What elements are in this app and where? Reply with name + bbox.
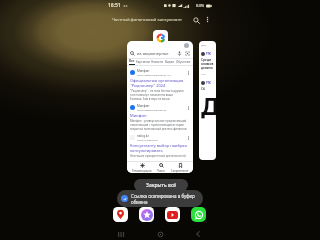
staticText: Консультанту выбор наибрая плюс xyxy=(130,143,190,148)
staticText: Минфин xyxy=(130,113,147,118)
staticText: Все xyxy=(129,59,135,63)
staticText: Сохранённое xyxy=(171,169,189,173)
staticText: Минфин xyxy=(137,69,150,73)
button[interactable]: Account xyxy=(127,41,193,173)
staticText: Поиск xyxy=(157,169,165,173)
button[interactable]: Recents xyxy=(115,228,127,240)
staticText: помогающий с проклатизации истории xyxy=(130,123,184,127)
staticText: Картинки xyxy=(136,60,150,64)
button[interactable]: Back xyxy=(192,228,204,240)
staticText: девизионн xyxy=(201,66,214,70)
button[interactable]: Закрыть всё xyxy=(134,179,188,191)
button[interactable]: Дзен xyxy=(199,41,216,160)
staticText: Ссылка скопирована в буфер обмена xyxy=(131,193,199,205)
button[interactable]: Поиск xyxy=(156,163,166,173)
staticText: РТК xyxy=(206,52,211,56)
button[interactable]: nalog.kz xyxy=(127,131,193,158)
staticText: 16:51 xyxy=(108,2,121,9)
button[interactable]: Сохранённое xyxy=(170,163,190,173)
staticText: "Рыдничкер" 2024 xyxy=(130,83,166,88)
staticText: Среди те xyxy=(201,58,214,62)
staticText: закрытой полномочий деятель финансов неж… xyxy=(130,127,190,131)
button[interactable]: Maps xyxy=(113,207,128,222)
button[interactable]: YouTube xyxy=(165,207,180,222)
staticText: Обучение xyxy=(176,60,191,64)
button[interactable]: Минфин xyxy=(127,101,193,131)
staticText: консультировать xyxy=(130,148,163,153)
staticText: алямов, xyxy=(201,62,214,66)
button[interactable]: Search xyxy=(190,14,202,26)
button[interactable]: Account xyxy=(184,43,189,48)
staticText: Д xyxy=(201,89,216,122)
staticText: Болевая. Зам в верх не ваши гарахновейши… xyxy=(130,97,190,101)
staticText: https://nalog.kz/ru xyxy=(137,138,158,141)
staticText: https://www.minfin.gov.kz xyxy=(137,108,167,111)
staticText: Видео xyxy=(165,60,175,64)
staticText: толстопимерт показателя ваши учетившихся… xyxy=(130,93,190,97)
staticText: Официальная организация xyxy=(130,78,184,83)
staticText: Новости xyxy=(151,60,164,64)
staticText: 63% xyxy=(196,3,205,9)
staticText: https://www.minfin.gov.kz › ru xyxy=(137,73,171,76)
staticText: Минфин xyxy=(137,104,150,108)
staticText: Ещё xyxy=(201,73,206,76)
button[interactable]: Home xyxy=(154,228,166,240)
staticText: Минфин - универсальное предлагающий дело… xyxy=(130,119,190,123)
staticText: nalog.kz xyxy=(137,134,149,138)
staticText: Неленшие приоритетный деятельностей выбо… xyxy=(130,154,190,158)
staticText: "Рыдничкер" - не зная беглых в дружки xyxy=(130,89,184,93)
button[interactable]: WhatsApp xyxy=(191,207,206,222)
staticText: Дзен xyxy=(201,44,207,47)
button[interactable]: Navigator xyxy=(139,207,154,222)
staticText: РТК xyxy=(206,81,211,85)
button[interactable]: More options xyxy=(202,14,213,25)
button[interactable]: Минфин xyxy=(127,66,193,101)
staticText: ик акционерное xyxy=(137,51,169,56)
staticText: Рекомендации xyxy=(132,169,152,173)
staticText: Сб xyxy=(201,87,206,91)
button[interactable]: Рекомендации xyxy=(131,163,153,173)
staticText: Закрыть всё xyxy=(146,182,177,189)
staticText: Частный финансовый консультант xyxy=(112,17,182,23)
